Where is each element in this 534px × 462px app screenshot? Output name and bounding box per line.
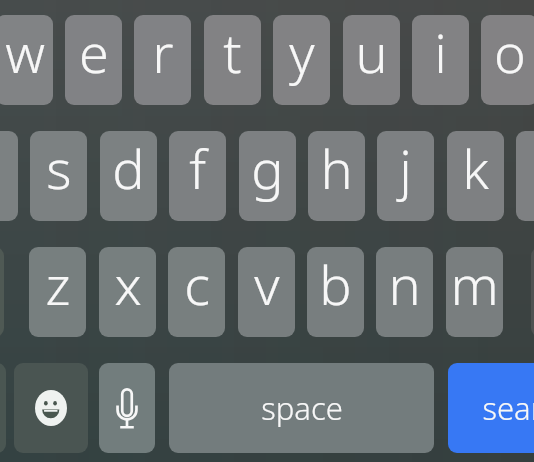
staticText: g <box>251 131 284 205</box>
button[interactable]: y <box>273 15 330 105</box>
button[interactable]: b <box>307 247 364 337</box>
button[interactable]: z <box>29 247 86 337</box>
staticText: w <box>5 15 45 89</box>
staticText: e <box>79 15 109 89</box>
staticText: n <box>388 247 421 321</box>
button[interactable]: k <box>447 131 504 221</box>
staticText: k <box>462 131 489 205</box>
staticText: s <box>46 131 72 205</box>
staticText: d <box>112 131 145 205</box>
button[interactable]: w <box>0 15 53 105</box>
staticText: b <box>319 247 352 321</box>
staticText: i <box>434 15 447 89</box>
staticText: u <box>355 15 388 89</box>
button[interactable]: s <box>30 131 87 221</box>
button[interactable]: u <box>343 15 400 105</box>
button[interactable]: t <box>204 15 261 105</box>
button[interactable]: m <box>446 247 503 337</box>
button[interactable]: d <box>100 131 157 221</box>
staticText: v <box>254 247 280 321</box>
button[interactable]: search <box>448 363 534 453</box>
staticText: f <box>189 131 206 205</box>
button[interactable]: o <box>481 15 534 105</box>
staticText: space <box>261 387 343 429</box>
button[interactable]: c <box>168 247 225 337</box>
button[interactable]: space <box>169 363 434 453</box>
staticText: r <box>152 15 174 89</box>
button[interactable]: g <box>239 131 296 221</box>
staticText: o <box>494 15 526 89</box>
button[interactable]: Voice input <box>99 363 155 453</box>
button[interactable]: x <box>99 247 156 337</box>
button[interactable]: n <box>376 247 433 337</box>
staticText: h <box>320 131 353 205</box>
button[interactable]: f <box>169 131 226 221</box>
button[interactable]: r <box>134 15 191 105</box>
button[interactable]: v <box>238 247 295 337</box>
button[interactable]: h <box>308 131 365 221</box>
button[interactable]: Symbols <box>0 363 6 453</box>
staticText: m <box>450 247 499 321</box>
button[interactable]: Emoji <box>14 363 88 453</box>
button[interactable]: e <box>65 15 122 105</box>
staticText: j <box>399 131 412 205</box>
button[interactable]: Backspace <box>531 247 534 337</box>
staticText: t <box>223 15 242 89</box>
staticText: c <box>184 247 210 321</box>
button[interactable]: i <box>412 15 469 105</box>
staticText: y <box>289 15 315 89</box>
staticText: z <box>45 247 71 321</box>
button[interactable]: l <box>516 131 534 221</box>
staticText: x <box>114 247 142 321</box>
button[interactable]: a <box>0 131 18 221</box>
button[interactable]: Shift <box>0 247 4 337</box>
staticText: search <box>482 387 534 429</box>
button[interactable]: j <box>377 131 434 221</box>
